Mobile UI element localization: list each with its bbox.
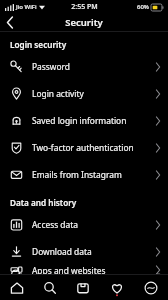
button[interactable]: Shop — [66, 275, 100, 300]
staticText: Emails from Instagram — [32, 169, 156, 180]
button[interactable]: Download data — [0, 238, 168, 265]
staticText: Download data — [32, 246, 156, 257]
staticText: Two-factor authentication — [32, 142, 156, 153]
button[interactable]: Two-factor authentication — [0, 134, 168, 161]
staticText: Login security — [10, 39, 67, 50]
staticText: Saved login information — [32, 115, 156, 126]
button[interactable]: Profile — [134, 275, 168, 300]
button[interactable]: Apps and websites — [0, 265, 168, 274]
button[interactable]: Activity — [100, 275, 134, 300]
button[interactable]: Emails from Instagram — [0, 161, 168, 188]
staticText: Access data — [32, 219, 156, 230]
staticText: Login activity — [32, 88, 156, 99]
button[interactable]: Password — [0, 53, 168, 80]
button[interactable]: Access data — [0, 211, 168, 238]
staticText: Data and history — [10, 197, 77, 208]
button[interactable]: Saved login information — [0, 107, 168, 134]
button[interactable]: Home — [0, 275, 33, 300]
staticText: Security — [65, 16, 103, 29]
staticText: 60% — [137, 3, 149, 11]
button[interactable]: Search — [33, 275, 66, 300]
button[interactable]: Back — [0, 14, 20, 31]
button[interactable]: Login activity — [0, 80, 168, 107]
staticText: Password — [32, 61, 156, 72]
staticText: 2:55 PM — [71, 2, 98, 12]
staticText: Apps and websites — [32, 265, 156, 274]
staticText: Jio WiFi — [16, 3, 37, 11]
